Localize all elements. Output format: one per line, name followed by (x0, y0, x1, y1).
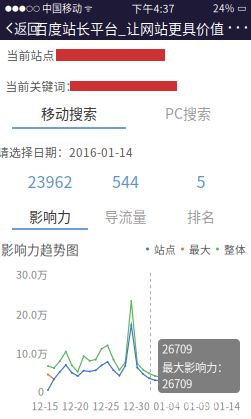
staticText: 12-30 (123, 399, 150, 413)
staticText: 下午4:37 (131, 0, 174, 16)
staticText: 30.0万 (16, 266, 48, 282)
staticText: • • • (227, 23, 248, 33)
staticText: 01-04 (153, 399, 180, 413)
staticText: 站点影响力：26709 (162, 324, 228, 357)
staticText: 24% (213, 1, 234, 15)
staticText: 12-15 (31, 399, 58, 413)
staticText: 请选择日期：2016-01-14 (0, 143, 133, 160)
staticText: 最大影响力：26709 (162, 359, 228, 392)
staticText: 返回 (14, 18, 40, 38)
staticText: ▭ (234, 2, 246, 14)
staticText: ●●●○○ (5, 3, 40, 13)
button[interactable]: 返回 (7, 16, 47, 40)
button[interactable]: 影响力 (12, 203, 88, 229)
button[interactable]: 导流量 (87, 203, 163, 229)
staticText: 移动搜索 (41, 103, 97, 123)
staticText: 整体 (224, 241, 246, 257)
button[interactable]: PC搜索 (131, 99, 245, 127)
staticText: 20.0万 (16, 306, 48, 322)
staticText: 排名 (187, 206, 215, 226)
button[interactable]: More (226, 17, 250, 39)
staticText: 5 (196, 169, 205, 193)
staticText: 最大 (189, 241, 211, 257)
staticText: 544 (112, 169, 139, 193)
staticText: 百度站长平台_让网站更具价值 (34, 18, 224, 38)
button[interactable]: 移动搜索 (12, 99, 126, 127)
staticText: 中国移动 (40, 1, 84, 15)
staticText: 当前关键词： (5, 77, 77, 94)
staticText: ᯤ (84, 2, 93, 14)
staticText: 01-14 (213, 399, 240, 413)
staticText: PC搜索 (165, 103, 211, 123)
staticText: 12-25 (92, 399, 119, 413)
staticText: 当前站点： (6, 46, 66, 63)
staticText: 01-09 (183, 399, 210, 413)
staticText: 影响力 (29, 206, 71, 226)
staticText: 10.0万 (16, 345, 48, 361)
staticText: 0 (38, 383, 44, 399)
staticText: 站点 (154, 241, 176, 257)
button[interactable]: 排名 (163, 203, 239, 229)
staticText: 导流量 (104, 206, 146, 226)
staticText: 23962 (27, 169, 72, 193)
staticText: 影响力趋势图 (1, 240, 79, 258)
staticText: 整体影响力：35465 (162, 394, 228, 419)
staticText: 12-20 (62, 399, 89, 413)
